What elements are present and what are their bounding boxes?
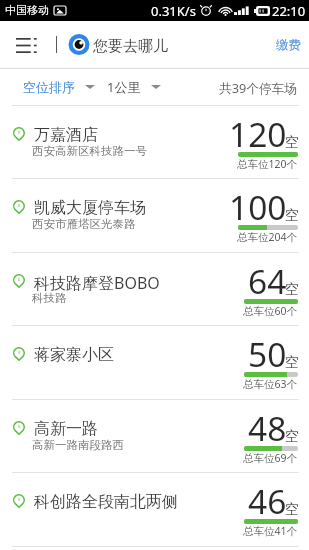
staticText: 64 [248,258,287,304]
staticText: 总车位63个 [243,377,298,391]
staticText: 共39个停车场 [219,79,297,96]
staticText: 总车位120个 [237,157,298,171]
staticText: 凯威大厦停车场 [34,198,146,218]
staticText: 总车位69个 [243,451,298,465]
staticText: 48 [248,405,287,451]
button[interactable]: 高新一路 [0,400,309,472]
staticText: 总车位41个 [243,524,298,538]
staticText: 中国移动 [5,3,49,17]
staticText: 空位排序 [23,79,75,95]
staticText: 22:10 [272,2,306,20]
staticText: 科创路全段南北两侧 [34,492,178,512]
button[interactable]: Menu [0,21,50,68]
button[interactable]: 缴费 [268,21,309,68]
staticText: 蒋家寨小区 [34,345,114,365]
staticText: 科技路 [32,291,67,305]
staticText: 100 [229,184,287,230]
staticText: 空 [285,354,299,372]
staticText: 1公里 [107,78,141,96]
staticText: 空 [285,281,299,299]
staticText: 高新一路南段路西 [32,438,124,452]
staticText: 万嘉酒店 [34,125,98,145]
button[interactable]: 蒋家寨小区 [0,326,309,398]
button[interactable]: 凯威大厦停车场 [0,179,309,251]
staticText: 空 [285,501,299,519]
button[interactable]: 万嘉酒店 [0,106,309,178]
button[interactable]: 科技路摩登BOBO [0,253,309,325]
staticText: 120 [229,111,287,157]
button[interactable]: 空位排序 [23,69,95,105]
staticText: 西安市雁塔区光泰路 [32,217,136,231]
staticText: 科技路摩登BOBO [34,272,160,294]
staticText: 空 [285,428,299,446]
staticText: 总车位204个 [237,230,298,244]
staticText: 西安高新区科技路一号 [32,144,147,158]
staticText: 缴费 [276,37,301,53]
staticText: 50 [248,331,287,377]
button[interactable]: 科创路全段南北两侧 [0,473,309,545]
button[interactable]: 1公里 [107,69,161,105]
staticText: 您要去哪儿 [93,37,168,56]
staticText: 空 [285,134,299,152]
staticText: 总车位60个 [243,304,298,318]
staticText: 46 [248,478,287,524]
staticText: 高新一路 [34,419,98,439]
staticText: 0.31K/s [151,2,196,20]
staticText: 空 [285,207,299,225]
